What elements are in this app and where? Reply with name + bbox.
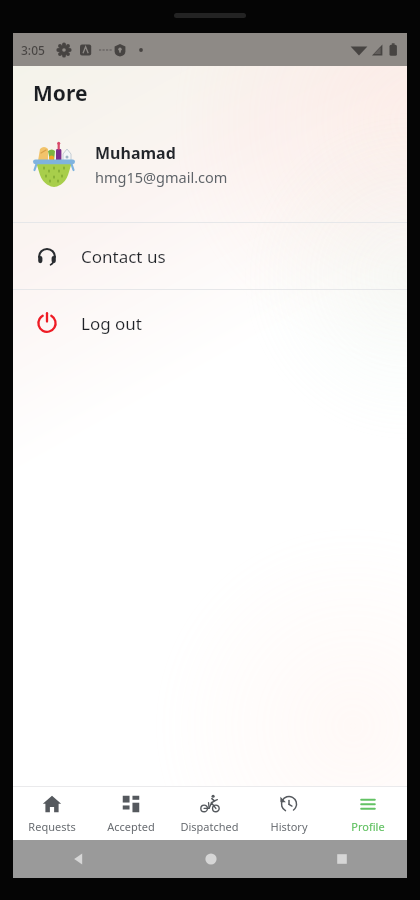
button[interactable]: Home (201, 849, 221, 869)
button[interactable]: Accepted (91, 793, 170, 834)
button[interactable]: Requests (13, 793, 91, 834)
staticText: Muhamad (95, 142, 176, 164)
button[interactable]: Dispatched (170, 793, 249, 834)
button[interactable]: History (249, 793, 328, 834)
staticText: History (270, 819, 308, 834)
staticText: Accepted (107, 819, 155, 834)
button[interactable]: Recents (332, 849, 352, 869)
button[interactable]: Log out (13, 290, 407, 356)
button[interactable]: Muhamad (13, 131, 407, 197)
button[interactable]: Profile (328, 793, 407, 834)
button[interactable]: Back (69, 849, 89, 869)
staticText: hmg15@gmail.com (95, 167, 228, 187)
staticText: Contact us (81, 245, 166, 268)
staticText: More (33, 79, 88, 108)
button[interactable]: Contact us (13, 223, 407, 289)
staticText: Requests (28, 819, 76, 834)
staticText: Dispatched (180, 819, 239, 834)
staticText: Profile (351, 819, 385, 834)
staticText: Log out (81, 312, 142, 335)
staticText: 3:05 (21, 42, 45, 58)
